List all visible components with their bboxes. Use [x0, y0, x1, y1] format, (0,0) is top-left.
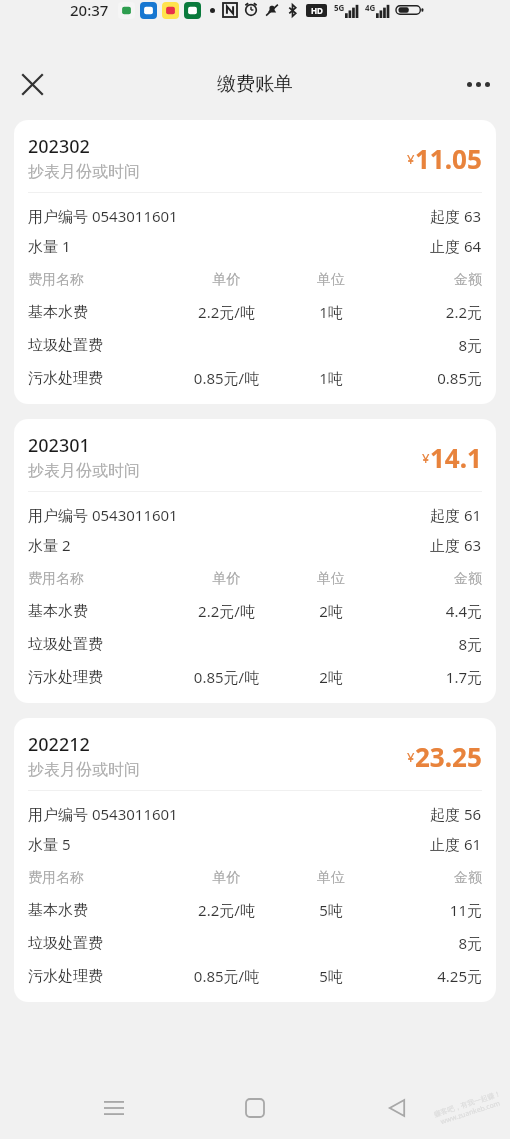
button[interactable]: Back — [369, 1080, 425, 1136]
staticText: 抄表月份或时间 — [28, 760, 140, 780]
staticText: 垃圾处置费 — [28, 934, 169, 953]
staticText: 2.2元/吨 — [169, 302, 284, 322]
staticText: 4.25元 — [378, 966, 482, 986]
staticText: 金额 — [378, 271, 482, 289]
staticText: 单位 — [284, 570, 378, 588]
staticText: 基本水费 — [28, 901, 169, 920]
staticText: 费用名称 — [28, 271, 169, 289]
staticText: 水量 1 — [28, 236, 71, 256]
staticText: 单位 — [284, 869, 378, 887]
button[interactable]: Recent apps — [86, 1080, 142, 1136]
staticText: 止度 64 — [430, 236, 482, 256]
button[interactable]: More options — [454, 60, 502, 108]
staticText: 用户编号 0543011601 — [28, 804, 178, 824]
staticText: 垃圾处置费 — [28, 336, 169, 355]
staticText: 4G — [365, 2, 376, 13]
staticText: 2.2元 — [378, 302, 482, 322]
staticText: 金额 — [378, 869, 482, 887]
staticText: 1.7元 — [378, 667, 482, 687]
staticText: 基本水费 — [28, 602, 169, 621]
staticText: 5吨 — [284, 900, 378, 920]
staticText: 2吨 — [284, 601, 378, 621]
staticText: www.zuankeb.com — [439, 1098, 501, 1127]
staticText: 基本水费 — [28, 303, 169, 322]
staticText: 污水处理费 — [28, 668, 169, 687]
staticText: 11.05 — [415, 141, 482, 176]
staticText: ¥ — [407, 150, 415, 168]
staticText: 水量 5 — [28, 834, 71, 854]
staticText: 垃圾处置费 — [28, 635, 169, 654]
staticText: 单价 — [169, 271, 284, 289]
staticText: 11元 — [378, 900, 482, 920]
staticText: 5吨 — [284, 966, 378, 986]
staticText: 0.85元/吨 — [169, 966, 284, 986]
staticText: 202302 — [28, 134, 90, 159]
staticText: 8元 — [378, 634, 482, 654]
staticText: 抄表月份或时间 — [28, 162, 140, 182]
staticText: 费用名称 — [28, 570, 169, 588]
staticText: 金额 — [378, 570, 482, 588]
staticText: 14.1 — [430, 440, 482, 475]
button[interactable]: 202212 — [14, 718, 496, 1002]
staticText: 止度 63 — [430, 535, 482, 555]
staticText: 0.85元/吨 — [169, 368, 284, 388]
staticText: ¥ — [422, 449, 430, 467]
button[interactable]: 202302 — [14, 120, 496, 404]
staticText: ¥ — [407, 748, 415, 766]
button[interactable]: 202301 — [14, 419, 496, 703]
staticText: 抄表月份或时间 — [28, 461, 140, 481]
staticText: 23.25 — [415, 739, 482, 774]
staticText: 2吨 — [284, 667, 378, 687]
staticText: 5G — [334, 2, 345, 13]
staticText: 8元 — [378, 933, 482, 953]
staticText: 1吨 — [284, 302, 378, 322]
staticText: 202301 — [28, 433, 90, 458]
staticText: 用户编号 0543011601 — [28, 505, 178, 525]
staticText: 0.85元/吨 — [169, 667, 284, 687]
staticText: 单价 — [169, 869, 284, 887]
staticText: 起度 61 — [430, 505, 482, 525]
button[interactable]: Close — [8, 60, 56, 108]
staticText: 污水处理费 — [28, 967, 169, 986]
staticText: 20:37 — [70, 0, 109, 20]
staticText: 4.4元 — [378, 601, 482, 621]
staticText: 202212 — [28, 732, 90, 757]
staticText: 费用名称 — [28, 869, 169, 887]
staticText: 污水处理费 — [28, 369, 169, 388]
staticText: 2.2元/吨 — [169, 900, 284, 920]
staticText: 赚客吧，有我一起赚！ — [433, 1089, 502, 1119]
staticText: 8元 — [378, 335, 482, 355]
staticText: 止度 61 — [430, 834, 482, 854]
staticText: 起度 56 — [430, 804, 482, 824]
staticText: 起度 63 — [430, 206, 482, 226]
staticText: 用户编号 0543011601 — [28, 206, 178, 226]
staticText: 缴费账单 — [217, 72, 293, 96]
staticText: 单位 — [284, 271, 378, 289]
button[interactable]: Home — [227, 1080, 283, 1136]
staticText: 1吨 — [284, 368, 378, 388]
staticText: 0.85元 — [378, 368, 482, 388]
staticText: 水量 2 — [28, 535, 71, 555]
staticText: HD — [311, 5, 323, 16]
staticText: 2.2元/吨 — [169, 601, 284, 621]
staticText: 单价 — [169, 570, 284, 588]
